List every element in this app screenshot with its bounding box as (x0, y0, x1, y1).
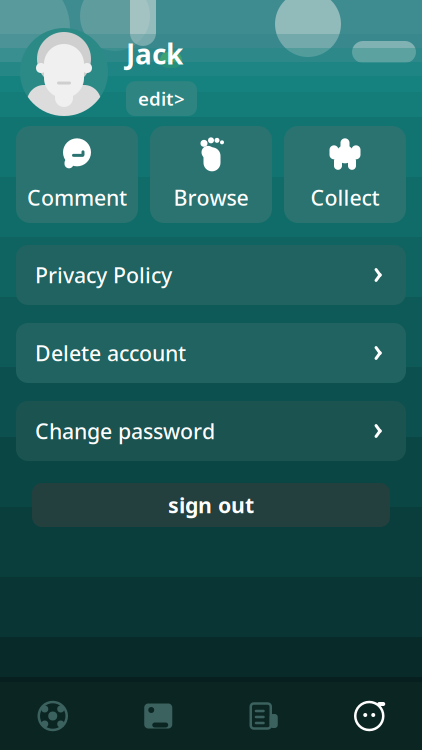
button[interactable]: Profile (316, 682, 422, 750)
button[interactable]: Collect (284, 126, 406, 223)
staticText: Browse (173, 183, 248, 212)
staticText: Jack (126, 35, 183, 72)
staticText: Privacy Policy (35, 261, 172, 289)
button[interactable]: News (211, 682, 316, 750)
button[interactable]: Privacy Policy (16, 245, 406, 305)
button[interactable]: Browse (150, 126, 272, 223)
button[interactable]: Matches (0, 682, 105, 750)
staticText: edit> (138, 86, 185, 111)
button[interactable]: Comment (16, 126, 138, 223)
button[interactable]: Photos (105, 682, 211, 750)
button[interactable]: sign out (32, 483, 390, 527)
staticText: sign out (168, 491, 254, 519)
staticText: Collect (310, 183, 379, 212)
button[interactable]: Change password (16, 401, 406, 461)
staticText: Change password (35, 417, 215, 445)
button[interactable]: edit> (126, 81, 197, 116)
staticText: Comment (27, 183, 127, 212)
staticText: Delete account (35, 339, 186, 367)
button[interactable]: Delete account (16, 323, 406, 383)
